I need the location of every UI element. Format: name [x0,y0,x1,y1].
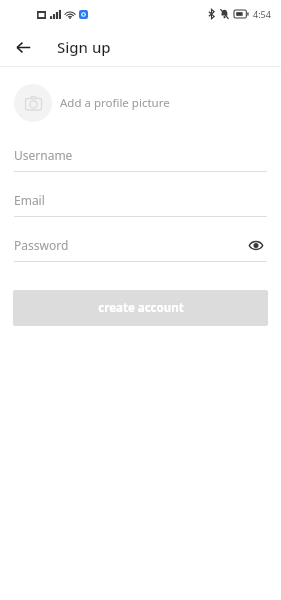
button[interactable]: Show password [245,234,267,256]
button[interactable]: Password [14,234,267,262]
staticText: Password [14,237,69,253]
button[interactable]: Add a profile picture [14,84,267,122]
button[interactable]: Username [14,144,267,172]
staticText: Email [14,192,45,208]
button[interactable]: create account [13,290,268,326]
staticText: 4:54 [253,8,271,20]
staticText: Sign up [57,37,111,57]
button[interactable]: Back [9,33,37,61]
staticText: create account [98,300,184,316]
staticText: Username [14,147,73,163]
button[interactable]: Email [14,189,267,217]
staticText: Add a profile picture [60,95,170,111]
